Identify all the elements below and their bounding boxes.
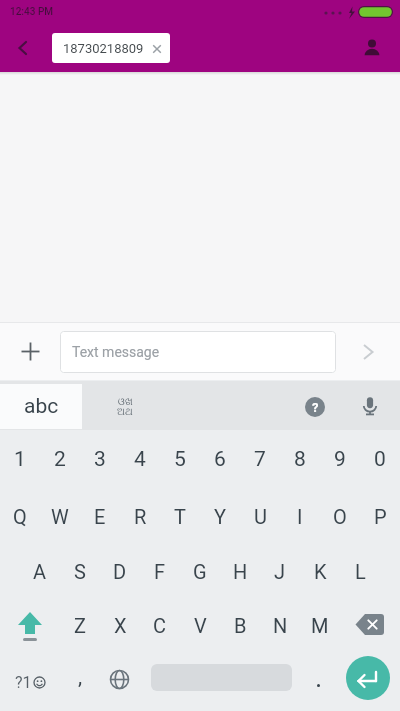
- staticText: D: [113, 560, 127, 583]
- button[interactable]: S: [60, 544, 100, 598]
- staticText: W: [51, 505, 69, 528]
- staticText: P: [374, 505, 387, 528]
- staticText: abc: [24, 394, 59, 419]
- staticText: ଓଖ: [118, 397, 133, 407]
- button[interactable]: E: [80, 489, 120, 543]
- button[interactable]: 1: [0, 432, 40, 486]
- staticText: L: [355, 560, 366, 583]
- button[interactable]: O: [320, 489, 360, 543]
- button[interactable]: 7: [240, 432, 280, 486]
- button[interactable]: X: [100, 598, 140, 652]
- staticText: 18730218809: [63, 41, 144, 56]
- button[interactable]: [0, 323, 60, 380]
- button[interactable]: 9: [320, 432, 360, 486]
- staticText: ଅଥ: [117, 407, 133, 417]
- staticText: J: [274, 560, 286, 583]
- staticText: ,: [78, 665, 83, 690]
- button[interactable]: Y: [200, 489, 240, 543]
- button[interactable]: Q: [0, 489, 40, 543]
- button[interactable]: M: [300, 598, 340, 652]
- staticText: Y: [214, 505, 227, 528]
- staticText: A: [33, 560, 47, 583]
- button[interactable]: Text message: [60, 331, 336, 373]
- button[interactable]: V: [180, 598, 220, 652]
- button[interactable]: [344, 24, 400, 72]
- button[interactable]: 0: [360, 432, 400, 486]
- button[interactable]: 5: [160, 432, 200, 486]
- button[interactable]: L: [340, 544, 380, 598]
- button[interactable]: U: [240, 489, 280, 543]
- button[interactable]: P: [360, 489, 400, 543]
- button[interactable]: A: [20, 544, 60, 598]
- button[interactable]: ଓଖ: [95, 381, 155, 433]
- staticText: I: [297, 505, 303, 528]
- button[interactable]: R: [120, 489, 160, 543]
- button[interactable]: W: [40, 489, 80, 543]
- button[interactable]: [340, 598, 400, 652]
- button[interactable]: G: [180, 544, 220, 598]
- staticText: 2: [54, 447, 66, 472]
- staticText: G: [193, 560, 207, 583]
- button[interactable]: [348, 381, 392, 433]
- button[interactable]: 2: [40, 432, 80, 486]
- button[interactable]: 4: [120, 432, 160, 486]
- button[interactable]: 3: [80, 432, 120, 486]
- button[interactable]: 6: [200, 432, 240, 486]
- button[interactable]: abc: [0, 384, 82, 429]
- staticText: 12:43 PM: [10, 6, 54, 18]
- staticText: C: [153, 614, 167, 637]
- staticText: 9: [334, 447, 346, 472]
- staticText: 1: [14, 447, 26, 472]
- staticText: 5: [174, 447, 186, 472]
- button[interactable]: Z: [60, 598, 100, 652]
- button[interactable]: I: [280, 489, 320, 543]
- button[interactable]: D: [100, 544, 140, 598]
- staticText: T: [174, 505, 186, 528]
- staticText: 6: [214, 447, 226, 472]
- staticText: ?1: [15, 673, 32, 692]
- button[interactable]: ?1: [2, 655, 58, 709]
- button[interactable]: [0, 24, 46, 72]
- button[interactable]: 18730218809: [52, 33, 170, 63]
- staticText: B: [234, 614, 247, 637]
- staticText: 3: [94, 447, 106, 472]
- staticText: Z: [74, 614, 86, 637]
- staticText: 7: [254, 447, 266, 472]
- button[interactable]: H: [220, 544, 260, 598]
- button[interactable]: 8: [280, 432, 320, 486]
- staticText: S: [74, 560, 86, 583]
- button[interactable]: B: [220, 598, 260, 652]
- staticText: R: [134, 505, 147, 528]
- staticText: Q: [13, 505, 27, 528]
- button[interactable]: F: [140, 544, 180, 598]
- staticText: U: [254, 505, 267, 528]
- staticText: Text message: [72, 344, 160, 360]
- staticText: H: [233, 560, 248, 583]
- staticText: 4: [134, 447, 146, 472]
- button[interactable]: [346, 656, 390, 700]
- staticText: 8: [294, 447, 306, 472]
- staticText: F: [154, 560, 166, 583]
- staticText: 0: [374, 447, 386, 472]
- staticText: V: [194, 614, 207, 637]
- button[interactable]: J: [260, 544, 300, 598]
- button[interactable]: N: [260, 598, 300, 652]
- staticText: ?: [312, 400, 319, 415]
- button[interactable]: [298, 658, 338, 711]
- button[interactable]: C: [140, 598, 180, 652]
- button[interactable]: ,: [60, 650, 100, 704]
- button[interactable]: [99, 652, 139, 706]
- button[interactable]: T: [160, 489, 200, 543]
- button[interactable]: K: [300, 544, 340, 598]
- staticText: N: [273, 614, 288, 637]
- button[interactable]: [336, 323, 400, 380]
- staticText: M: [311, 614, 329, 637]
- staticText: X: [114, 614, 127, 637]
- button[interactable]: [0, 598, 60, 652]
- staticText: O: [333, 505, 347, 528]
- staticText: K: [314, 560, 327, 583]
- staticText: E: [94, 505, 106, 528]
- button[interactable]: ?: [295, 381, 335, 433]
